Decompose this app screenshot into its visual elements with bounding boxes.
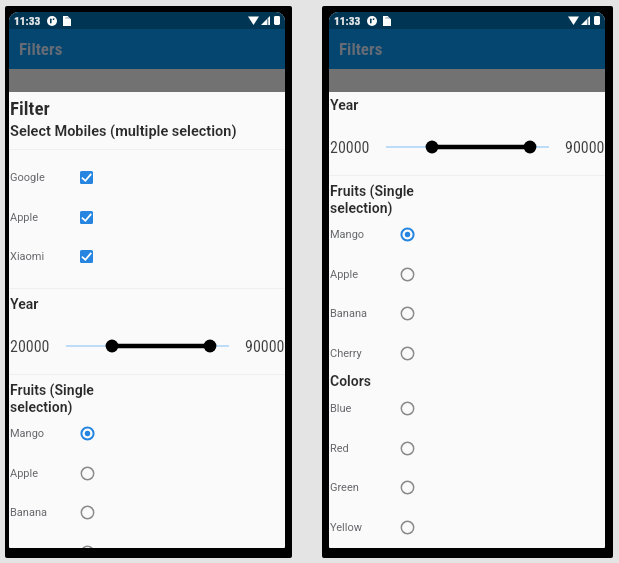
button[interactable]: Cherry [329, 333, 605, 373]
staticText: 11:33 [334, 14, 361, 27]
button[interactable]: Green [329, 467, 605, 507]
button[interactable]: Red [329, 428, 605, 468]
staticText: Filter [10, 97, 50, 119]
staticText: Yellow [330, 521, 362, 534]
button[interactable]: Year range slider [66, 337, 229, 355]
staticText: Colors [330, 373, 371, 389]
staticText: 90000 [565, 138, 605, 157]
button[interactable]: Apple [9, 197, 285, 237]
staticText: Select Mobiles (multiple selection) [10, 123, 237, 140]
button[interactable]: Blue [329, 388, 605, 428]
staticText: Green [330, 481, 359, 494]
button[interactable]: Yellow [329, 507, 605, 547]
button[interactable]: Mango [9, 413, 285, 453]
staticText: Year [330, 97, 359, 113]
button[interactable]: Filters [329, 29, 605, 69]
staticText: selection) [330, 200, 393, 216]
staticText: Filters [339, 39, 383, 59]
staticText: Xiaomi [10, 250, 45, 263]
staticText: Filters [19, 39, 63, 59]
staticText: 11:33 [14, 14, 41, 27]
button[interactable]: Google [9, 157, 285, 197]
button[interactable]: Apple [9, 453, 285, 493]
staticText: Mango [330, 228, 365, 241]
staticText: Banana [330, 307, 367, 320]
button[interactable]: Year range slider [386, 138, 549, 156]
staticText: Apple [10, 467, 39, 480]
staticText: Blue [330, 402, 352, 415]
staticText: Google [10, 171, 45, 184]
staticText: Mango [10, 427, 45, 440]
staticText: 90000 [245, 337, 285, 356]
button[interactable]: Banana [329, 293, 605, 333]
staticText: Cherry [330, 347, 362, 360]
button[interactable]: Filters [9, 29, 285, 69]
button[interactable]: Mango [329, 214, 605, 254]
staticText: Fruits (Single [330, 183, 414, 199]
staticText: Red [330, 442, 349, 455]
staticText: Fruits (Single [10, 382, 94, 398]
button[interactable]: Apple [329, 254, 605, 294]
button[interactable]: Cherry [9, 532, 285, 548]
staticText: Apple [10, 211, 39, 224]
staticText: selection) [10, 399, 73, 415]
button[interactable]: Xiaomi [9, 236, 285, 276]
staticText: Year [10, 296, 39, 312]
staticText: 20000 [330, 138, 370, 157]
staticText: 20000 [10, 337, 50, 356]
staticText: Banana [10, 506, 47, 519]
button[interactable]: Banana [9, 492, 285, 532]
staticText: Apple [330, 268, 359, 281]
